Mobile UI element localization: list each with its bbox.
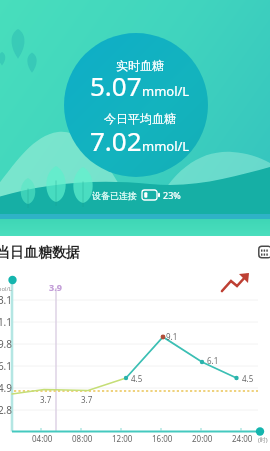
staticText: 23% xyxy=(163,189,181,201)
staticText: 5.07 xyxy=(90,68,142,103)
staticText: 9.1 xyxy=(166,331,178,342)
staticText: 16:00 xyxy=(152,433,173,444)
staticText: 24:00 xyxy=(232,433,253,444)
staticText: 6.1 xyxy=(0,359,12,373)
staticText: 13.1 xyxy=(0,293,12,307)
staticText: mmol/L xyxy=(142,137,190,155)
staticText: 3.7 xyxy=(81,394,93,405)
staticText: 3.9 xyxy=(49,281,62,293)
staticText: 7.02 xyxy=(90,123,142,158)
staticText: 4.9 xyxy=(0,381,12,395)
staticText: 12:00 xyxy=(112,433,133,444)
staticText: 4.5 xyxy=(131,373,143,384)
staticText: 20:00 xyxy=(192,433,213,444)
staticText: 实时血糖 xyxy=(116,58,164,73)
staticText: mmol/L xyxy=(0,285,12,293)
button[interactable]: 设备已连接 xyxy=(92,189,181,201)
button[interactable]: Select date xyxy=(258,245,270,259)
staticText: (时) xyxy=(258,436,268,444)
staticText: 3.7 xyxy=(40,394,52,405)
staticText: 当日血糖数据 xyxy=(0,244,80,262)
staticText: 9.8 xyxy=(0,337,12,351)
staticText: 2.8 xyxy=(0,403,12,417)
staticText: 今日平均血糖 xyxy=(104,111,176,126)
staticText: 4.5 xyxy=(242,373,254,384)
button[interactable]: 实时血糖 xyxy=(64,33,208,177)
staticText: 08:00 xyxy=(72,433,93,444)
staticText: 11.1 xyxy=(0,315,12,329)
staticText: 6.1 xyxy=(207,355,219,366)
staticText: 设备已连接 xyxy=(92,190,137,201)
staticText: 04:00 xyxy=(32,433,53,444)
staticText: mmol/L xyxy=(142,82,190,100)
